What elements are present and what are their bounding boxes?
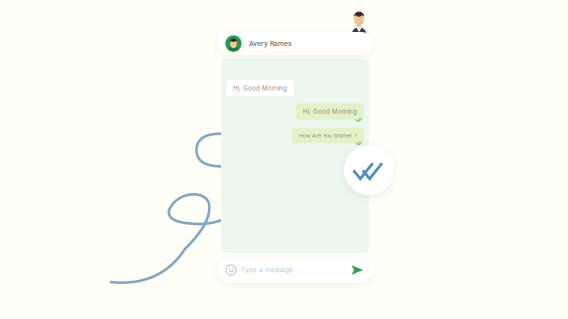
staticText: Avery Rames — [249, 39, 292, 48]
staticText: Type a message — [241, 266, 293, 274]
button[interactable]: Avery Rames — [217, 32, 373, 55]
staticText: Hi, Good Morning — [233, 84, 287, 92]
staticText: Hi, Good Morning — [303, 108, 357, 115]
staticText: How Are You brother ? — [299, 132, 357, 139]
button[interactable]: Type a message — [217, 257, 373, 283]
